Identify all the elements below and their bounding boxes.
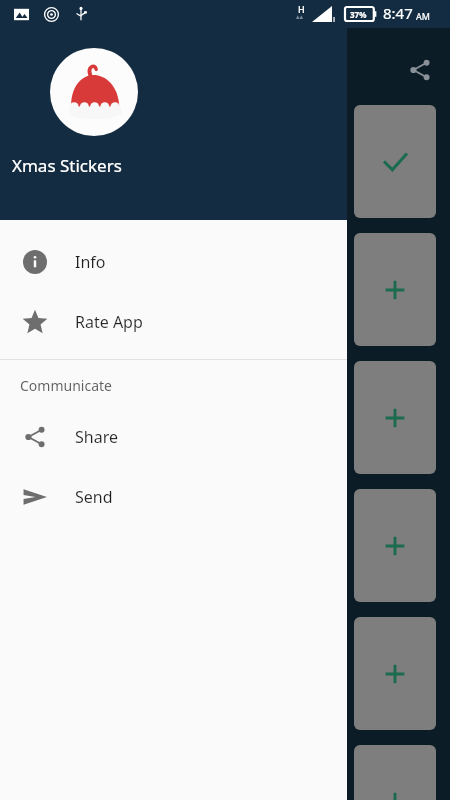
button[interactable] [354, 105, 436, 218]
staticText: Send [75, 486, 113, 508]
staticText: Info [75, 251, 106, 273]
staticText: H [298, 3, 305, 15]
staticText: ı [333, 13, 336, 24]
button[interactable]: Share [400, 50, 440, 90]
button[interactable]: Info [0, 232, 347, 292]
button[interactable]: Send [0, 467, 347, 527]
staticText: AM [416, 10, 430, 22]
button[interactable] [354, 489, 436, 602]
button[interactable] [354, 617, 436, 730]
staticText: 8:47 [383, 3, 413, 23]
staticText: Rate App [75, 311, 143, 333]
staticText: Communicate [20, 376, 112, 395]
button[interactable] [354, 361, 436, 474]
button[interactable]: Share [0, 407, 347, 467]
button[interactable]: Rate App [0, 292, 347, 352]
button[interactable] [354, 745, 436, 800]
button[interactable]: Xmas Stickers [0, 28, 347, 220]
staticText: ▴▴ [296, 13, 304, 21]
staticText: 37% [350, 9, 367, 20]
button[interactable] [354, 233, 436, 346]
staticText: Xmas Stickers [12, 154, 122, 177]
staticText: Share [75, 426, 118, 448]
